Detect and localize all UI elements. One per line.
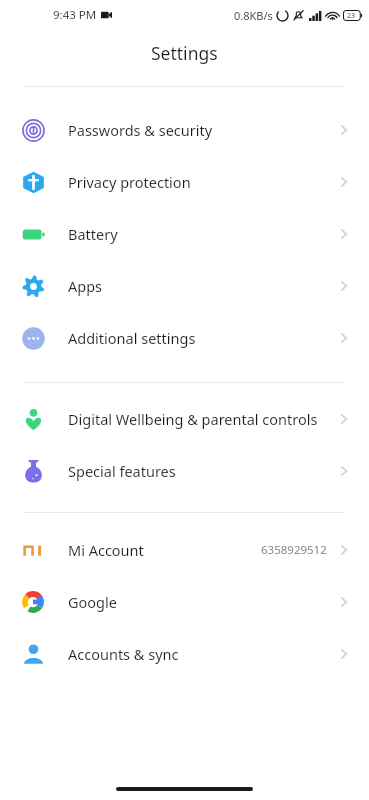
staticText: Settings	[151, 41, 218, 65]
button[interactable]: Battery	[0, 208, 369, 260]
staticText: 23	[347, 11, 356, 21]
staticText: Google	[68, 592, 117, 612]
staticText: Additional settings	[68, 328, 196, 348]
staticText: 9:43 PM	[53, 7, 97, 23]
staticText: Battery	[68, 224, 118, 244]
staticText: Mi Account	[68, 540, 144, 560]
staticText: Passwords & security	[68, 120, 213, 140]
staticText: Special features	[68, 461, 176, 481]
button[interactable]: Privacy protection	[0, 156, 369, 208]
staticText: 6358929512	[261, 542, 327, 558]
staticText: 0.8KB/s	[234, 8, 273, 23]
button[interactable]: Accounts & sync	[0, 628, 369, 680]
button[interactable]: Special features	[0, 445, 369, 497]
button[interactable]: Google	[0, 576, 369, 628]
button[interactable]: Apps	[0, 260, 369, 312]
staticText: Accounts & sync	[68, 644, 179, 664]
staticText: Privacy protection	[68, 172, 191, 192]
button[interactable]: Digital Wellbeing & parental controls	[0, 393, 369, 445]
button[interactable]: Passwords & security	[0, 104, 369, 156]
staticText: Digital Wellbeing & parental controls	[68, 409, 318, 429]
staticText: Apps	[68, 276, 103, 296]
button[interactable]: Mi Account	[0, 524, 369, 576]
button[interactable]: Additional settings	[0, 312, 369, 364]
